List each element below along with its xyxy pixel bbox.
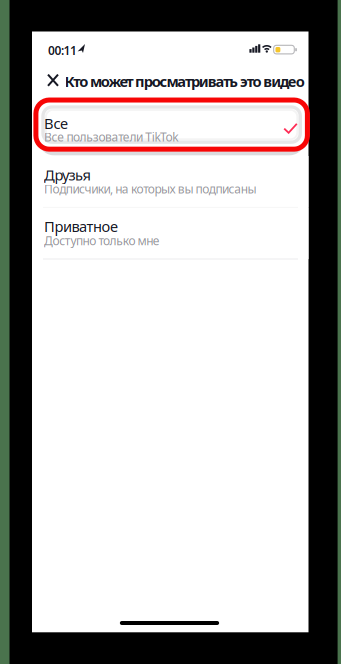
staticText: Подписчики, на которых вы подписаны [44,181,256,197]
staticText: Все [44,113,68,133]
button[interactable]: Все [32,94,309,160]
staticText: Друзья [44,165,90,184]
button[interactable]: Приватное [32,208,308,259]
staticText: Все пользователи TikTok [44,129,178,145]
staticText: Доступно только мне [44,233,160,248]
staticText: Кто может просматривать это видео [64,71,305,91]
button[interactable]: Close [39,66,67,94]
staticText: Приватное [44,217,118,236]
staticText: 00:11 [48,42,77,58]
button[interactable]: Друзья [32,156,308,207]
